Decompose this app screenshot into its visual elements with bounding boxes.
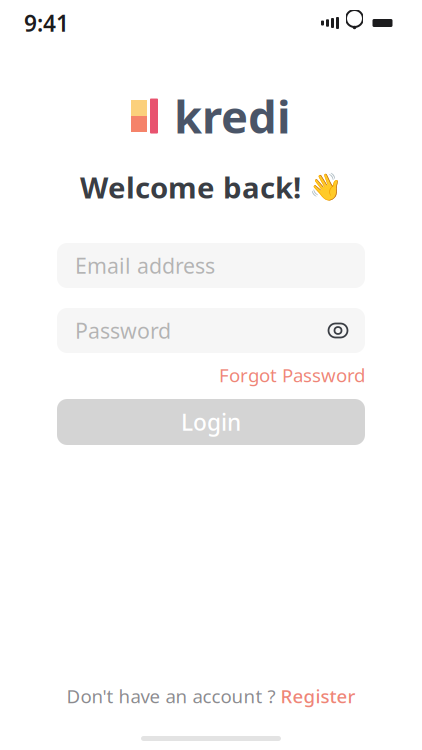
staticText: Register bbox=[280, 684, 355, 708]
staticText: Don't have an account ? bbox=[66, 684, 275, 708]
staticText: 9:41 bbox=[24, 8, 69, 38]
staticText: Welcome back! bbox=[80, 167, 301, 206]
button[interactable]: Show password bbox=[323, 315, 353, 345]
staticText: 👋 bbox=[309, 172, 342, 202]
staticText: Forgot Password bbox=[219, 363, 365, 387]
button[interactable]: Forgot Password bbox=[219, 363, 365, 387]
staticText: Login bbox=[181, 407, 241, 437]
button[interactable]: Don't have an account ? bbox=[66, 686, 355, 706]
staticText: kredi bbox=[174, 86, 291, 146]
button[interactable]: Login bbox=[57, 399, 365, 445]
staticText: Email address bbox=[75, 251, 215, 280]
staticText: Password bbox=[75, 316, 171, 345]
